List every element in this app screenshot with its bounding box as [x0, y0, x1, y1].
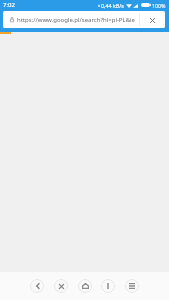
button[interactable]: https://www.google.pl/search?hl=pl-PL&ie	[3, 11, 165, 28]
staticText: 7:02	[3, 1, 15, 9]
button[interactable]: Menu	[125, 279, 139, 293]
button[interactable]: Home	[78, 279, 92, 293]
staticText: https://www.google.pl/search?hl=pl-PL&ie	[17, 16, 135, 24]
staticText: 100%	[152, 2, 166, 9]
button[interactable]: Back	[30, 279, 44, 293]
button[interactable]: Close tab	[54, 279, 68, 293]
staticText: 0,44 kB/s	[101, 2, 124, 9]
button[interactable]: Tabs	[101, 279, 115, 293]
button[interactable]: Stop loading	[147, 15, 157, 25]
